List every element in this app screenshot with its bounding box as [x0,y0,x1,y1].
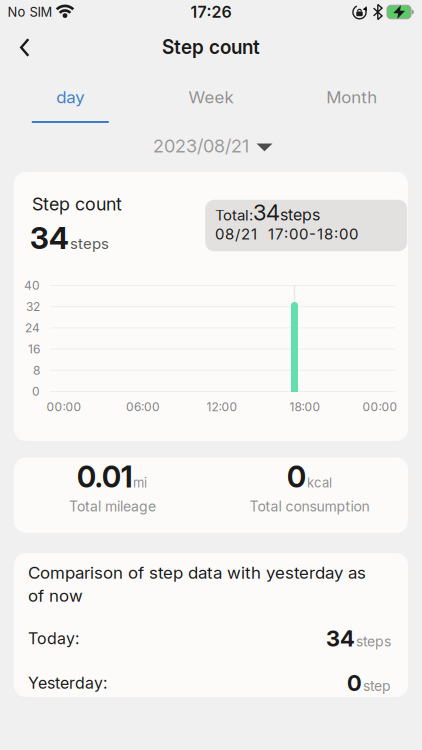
staticText: 34 [253,199,280,225]
staticText: steps [70,235,109,252]
staticText: 08/21 17:00-18:00 [215,225,358,243]
staticText: 34 [326,625,355,651]
staticText: 0 [287,460,306,494]
staticText: Today: [28,629,79,648]
staticText: 2023/08/21 [153,135,249,157]
staticText: steps [356,633,391,650]
staticText: 40 [24,278,40,293]
staticText: Total: [215,206,253,224]
staticText: 00:00 [46,400,81,414]
button[interactable]: Week [141,80,281,123]
staticText: 06:00 [126,400,160,414]
staticText: Yesterday: [28,674,107,692]
staticText: steps [280,205,320,224]
staticText: of now [28,585,83,606]
staticText: 0 [347,670,362,696]
staticText: Week [188,87,233,107]
staticText: 0 [32,384,40,399]
staticText: 12:00 [206,400,237,414]
staticText: 17:26 [190,3,231,21]
staticText: mi [133,475,147,490]
staticText: Comparison of step data with yesterday a… [28,562,366,582]
staticText: 00:00 [362,400,397,414]
staticText: 34 [30,220,69,256]
staticText: 8 [33,363,40,377]
staticText: Month [326,87,377,107]
staticText: No SIM [7,4,52,20]
staticText: Step count [162,36,260,58]
staticText: step [363,678,391,694]
staticText: 0.01 [77,460,132,494]
button[interactable]: 2023/08/21 [153,131,273,161]
button[interactable]: Back [3,33,47,62]
staticText: 16 [28,342,40,356]
button[interactable]: day [0,80,140,123]
staticText: 24 [25,321,40,335]
staticText: kcal [307,475,332,490]
staticText: Total mileage [69,498,156,515]
staticText: Total consumption [249,498,369,515]
staticText: day [56,87,84,107]
button[interactable]: Month [282,80,422,123]
staticText: Step count [32,193,122,215]
staticText: 32 [26,300,40,314]
staticText: 18:00 [289,400,320,414]
